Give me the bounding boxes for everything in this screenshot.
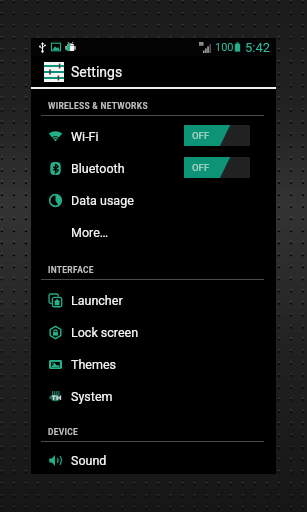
button[interactable]: System	[31, 380, 276, 412]
staticText: Themes	[71, 357, 117, 372]
button[interactable]: Themes	[31, 348, 276, 380]
staticText: Wi-Fi	[71, 129, 99, 144]
button[interactable]: Launcher	[31, 284, 276, 316]
staticText: 5:42	[245, 40, 271, 55]
staticText: Data usage	[71, 193, 134, 208]
staticText: More…	[71, 225, 109, 240]
staticText: OFF	[192, 130, 210, 141]
staticText: Lock screen	[71, 325, 139, 340]
staticText: Sound	[71, 453, 107, 468]
staticText: System	[71, 389, 113, 404]
button[interactable]: Sound	[31, 446, 276, 474]
button[interactable]: Bluetooth	[31, 152, 276, 184]
staticText: DEVICE	[48, 427, 79, 437]
button[interactable]: Toggle off	[184, 125, 250, 146]
button[interactable]: More…	[31, 216, 276, 248]
button[interactable]: Toggle off	[184, 157, 250, 178]
staticText: OFF	[192, 162, 210, 173]
staticText: Bluetooth	[71, 161, 125, 176]
staticText: 100	[215, 41, 234, 54]
button[interactable]: Settings	[31, 56, 276, 87]
staticText: INTERFACE	[48, 265, 94, 275]
staticText: Launcher	[71, 293, 123, 308]
button[interactable]: Lock screen	[31, 316, 276, 348]
button[interactable]: Wi-Fi	[31, 120, 276, 152]
staticText: Settings	[71, 64, 123, 80]
staticText: WIRELESS & NETWORKS	[48, 101, 148, 111]
button[interactable]: Data usage	[31, 184, 276, 216]
